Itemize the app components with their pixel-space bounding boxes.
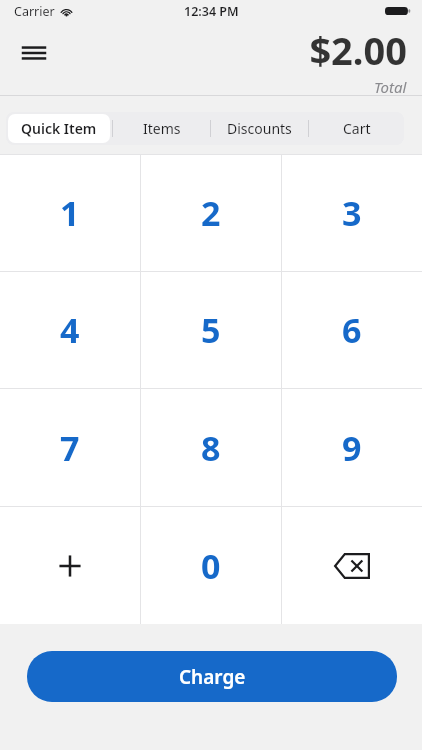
staticText: 7	[60, 425, 80, 471]
staticText: 5	[201, 307, 221, 353]
staticText: 3	[342, 190, 362, 236]
button[interactable]: Menu	[12, 35, 56, 71]
button[interactable]: 6	[282, 272, 422, 388]
button[interactable]: 8	[141, 389, 281, 506]
button[interactable]: 9	[282, 389, 422, 506]
button[interactable]: Items	[113, 112, 210, 145]
button[interactable]: 5	[141, 272, 281, 388]
button[interactable]: Delete	[282, 507, 422, 624]
staticText: $2.00	[309, 24, 407, 76]
staticText: 2	[201, 190, 221, 236]
button[interactable]: Add	[0, 507, 140, 624]
staticText: 8	[201, 425, 221, 471]
staticText: 6	[342, 307, 362, 353]
button[interactable]: 2	[141, 155, 281, 271]
staticText: 4	[60, 307, 80, 353]
staticText: Charge	[179, 664, 246, 690]
button[interactable]: 0	[141, 507, 281, 624]
button[interactable]: Discounts	[211, 112, 308, 145]
button[interactable]: Charge	[27, 651, 397, 702]
staticText: Quick Item	[21, 119, 97, 138]
button[interactable]: Cart	[309, 112, 404, 145]
button[interactable]: 7	[0, 389, 140, 506]
staticText: 12:34 PM	[184, 3, 239, 20]
staticText: 0	[201, 543, 221, 589]
button[interactable]: 1	[0, 155, 140, 271]
button[interactable]: 4	[0, 272, 140, 388]
staticText: 9	[342, 425, 362, 471]
staticText: Discounts	[227, 119, 292, 138]
staticText: Items	[143, 119, 181, 138]
button[interactable]: Quick Item	[8, 114, 110, 143]
staticText: Cart	[343, 119, 371, 138]
button[interactable]: 3	[282, 155, 422, 271]
staticText: 1	[60, 190, 80, 236]
staticText: Carrier	[14, 3, 55, 20]
staticText: Total	[374, 77, 407, 96]
